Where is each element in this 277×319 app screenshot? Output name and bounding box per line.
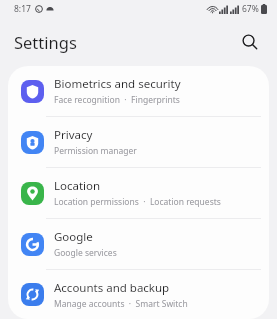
- staticText: Biometrics and security: [54, 76, 181, 92]
- button[interactable]: Privacy: [8, 117, 269, 167]
- staticText: Google services: [54, 247, 117, 259]
- staticText: 8:17: [14, 3, 31, 15]
- staticText: Location permissions · Location requests: [54, 196, 221, 208]
- staticText: 67%: [242, 3, 259, 15]
- staticText: Settings: [14, 31, 77, 53]
- button[interactable]: Biometrics and security: [8, 66, 269, 116]
- staticText: Location: [54, 178, 101, 194]
- staticText: Manage accounts · Smart Switch: [54, 298, 188, 310]
- button[interactable]: Accounts and backup: [8, 270, 269, 319]
- staticText: Face recognition · Fingerprints: [54, 94, 180, 106]
- button[interactable]: Location: [8, 168, 269, 218]
- staticText: Accounts and backup: [54, 280, 170, 296]
- button[interactable]: Google: [8, 219, 269, 269]
- staticText: Permission manager: [54, 145, 137, 157]
- button[interactable]: Search: [233, 25, 267, 59]
- staticText: Google: [54, 229, 93, 245]
- staticText: Privacy: [54, 127, 93, 143]
